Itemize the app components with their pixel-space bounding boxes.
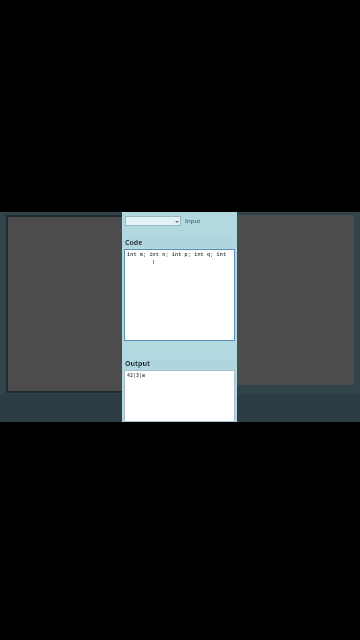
staticText: Code <box>125 238 143 247</box>
button[interactable]: 42|3|w <box>124 370 235 422</box>
button[interactable]: Choose input <box>125 216 181 226</box>
staticText: 42|3|w <box>127 372 146 379</box>
staticText: Output <box>125 359 151 368</box>
staticText: Input <box>185 217 201 225</box>
button[interactable]: int m; int n; int p; int q; int r; <box>124 249 235 341</box>
staticText: int m; int n; int p; int q; int r; <box>127 251 235 258</box>
